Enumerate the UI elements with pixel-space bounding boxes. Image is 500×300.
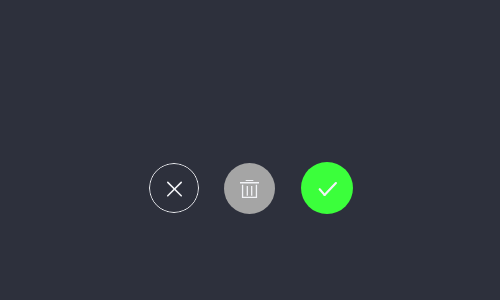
button[interactable]: Delete <box>224 163 275 214</box>
button[interactable]: Cancel <box>149 163 199 213</box>
button[interactable]: Confirm <box>301 162 353 214</box>
